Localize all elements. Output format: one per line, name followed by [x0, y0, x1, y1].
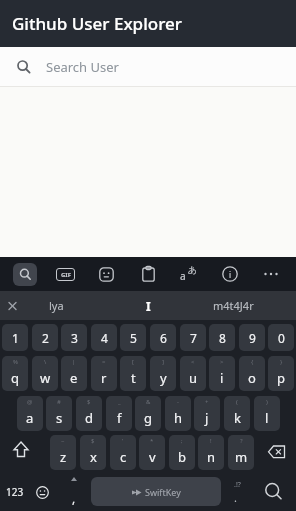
button[interactable]: ' [110, 435, 136, 470]
button[interactable]: } [268, 356, 294, 391]
staticText: h [174, 409, 183, 427]
button[interactable]: ; [169, 435, 195, 470]
button[interactable]: \ [32, 356, 58, 391]
staticText: } [280, 358, 283, 366]
staticText: , [72, 490, 76, 506]
button[interactable]: - [165, 396, 191, 431]
staticText: q [11, 369, 19, 387]
button[interactable]: 123 [2, 478, 28, 506]
button[interactable]: 8 [209, 324, 235, 351]
staticText: & [146, 398, 151, 406]
button[interactable]: SwiftKey [91, 477, 221, 506]
button[interactable]: | [61, 356, 87, 391]
staticText: > [220, 358, 224, 366]
button[interactable]: 0 [268, 324, 294, 351]
staticText: + [205, 398, 209, 406]
button[interactable]: $ [76, 396, 102, 431]
staticText: Github User Explorer [12, 12, 182, 35]
staticText: 7 [190, 330, 197, 346]
staticText: g [144, 409, 152, 427]
button[interactable] [142, 266, 155, 282]
button[interactable] [258, 439, 296, 465]
button[interactable]: 9 [239, 324, 265, 351]
button[interactable]: > [209, 356, 235, 391]
staticText: t [131, 369, 136, 387]
staticText: # [57, 398, 61, 406]
button[interactable]: ? [228, 435, 254, 470]
button[interactable]: # [46, 396, 72, 431]
staticText: 3 [71, 330, 78, 346]
button[interactable]: ] [150, 356, 176, 391]
staticText: lya [49, 298, 64, 313]
staticText: m [235, 448, 248, 466]
button[interactable] [4, 440, 38, 462]
button[interactable]: 1 [2, 324, 28, 351]
staticText: < [191, 358, 195, 366]
staticText: . [234, 490, 237, 505]
staticText: _ [118, 398, 121, 406]
staticText: ( [236, 398, 238, 406]
button[interactable]: a [180, 265, 198, 283]
staticText: r [101, 369, 107, 387]
button[interactable]: ! [198, 435, 224, 470]
staticText: 8 [219, 330, 226, 346]
staticText: SwiftKey [145, 486, 181, 498]
button[interactable]: 3 [61, 324, 87, 351]
button[interactable]: ~ [50, 435, 76, 470]
button[interactable] [258, 476, 290, 508]
staticText: $ [87, 398, 91, 406]
button[interactable]: % [2, 356, 28, 391]
button[interactable]: .!? [224, 477, 246, 507]
button[interactable]: 7 [180, 324, 206, 351]
button[interactable]: ) [254, 396, 280, 431]
button[interactable]: I [118, 291, 178, 320]
button[interactable]: ( [224, 396, 250, 431]
staticText: | [72, 358, 76, 366]
button[interactable] [13, 263, 37, 286]
staticText: w [40, 369, 51, 387]
staticText: $ [91, 437, 95, 445]
button[interactable] [32, 478, 52, 506]
button[interactable]: + [194, 396, 220, 431]
staticText: a [26, 409, 34, 427]
staticText: ~ [61, 437, 65, 445]
staticText: e [70, 369, 78, 387]
button[interactable]: 2 [32, 324, 58, 351]
button[interactable]: GIF [56, 268, 75, 281]
button[interactable]: lya [21, 291, 91, 320]
staticText: ' [122, 437, 124, 445]
button[interactable]: < [180, 356, 206, 391]
button[interactable] [99, 267, 114, 282]
button[interactable]: & [135, 396, 161, 431]
staticText: ? [240, 437, 243, 445]
button[interactable]: Search User [0, 47, 296, 86]
button[interactable] [6, 299, 19, 312]
staticText: 123 [6, 485, 24, 499]
staticText: i [229, 269, 232, 280]
staticText: ) [266, 398, 268, 406]
staticText: * [150, 437, 154, 445]
staticText: m4t4J4r [213, 298, 254, 313]
staticText: c [120, 448, 127, 466]
button[interactable]: * [139, 435, 165, 470]
button[interactable]: { [239, 356, 265, 391]
staticText: n [207, 448, 216, 466]
button[interactable]: , [64, 475, 84, 509]
staticText: { [251, 358, 254, 366]
button[interactable]: i [222, 266, 238, 282]
staticText: % [13, 358, 18, 366]
staticText: x [90, 448, 97, 466]
button[interactable]: [ [120, 356, 146, 391]
button[interactable]: m4t4J4r [193, 291, 273, 320]
button[interactable]: 4 [91, 324, 117, 351]
staticText: d [85, 409, 93, 427]
button[interactable]: $ [80, 435, 106, 470]
staticText: b [178, 448, 186, 466]
button[interactable]: = [91, 356, 117, 391]
button[interactable]: @ [17, 396, 43, 431]
button[interactable]: 6 [150, 324, 176, 351]
staticText: Search User [46, 58, 119, 76]
button[interactable]: 5 [120, 324, 146, 351]
button[interactable]: _ [106, 396, 132, 431]
button[interactable] [263, 272, 279, 276]
